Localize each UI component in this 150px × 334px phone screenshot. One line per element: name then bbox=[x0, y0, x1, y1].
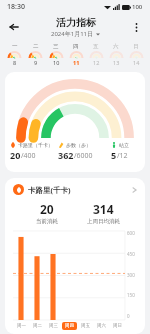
staticText: 18:30 bbox=[7, 2, 25, 12]
staticText: 12 bbox=[93, 59, 100, 66]
staticText: 600 bbox=[127, 230, 135, 236]
staticText: /12 bbox=[117, 151, 128, 161]
staticText: 9 bbox=[34, 59, 38, 66]
button[interactable]: 卡路里（千卡） bbox=[5, 72, 145, 172]
button[interactable]: 周日 bbox=[109, 320, 125, 332]
staticText: 四 bbox=[73, 43, 79, 50]
staticText: 二 bbox=[33, 43, 39, 50]
button[interactable]: 周六 bbox=[93, 320, 109, 332]
button[interactable]: More options bbox=[126, 17, 146, 37]
button[interactable]: Back bbox=[4, 17, 24, 37]
staticText: 周三 bbox=[49, 323, 58, 329]
staticText: 卡路里（千卡） bbox=[18, 142, 53, 148]
staticText: 上周日均消耗 bbox=[87, 218, 120, 225]
button[interactable]: 站立 bbox=[111, 142, 140, 161]
button[interactable]: 三 bbox=[46, 40, 66, 68]
staticText: 一 bbox=[12, 43, 18, 50]
button[interactable]: 周五 bbox=[77, 320, 93, 332]
button[interactable]: 周四 bbox=[61, 320, 77, 332]
staticText: 100 bbox=[132, 3, 143, 11]
staticText: 0 bbox=[127, 313, 130, 319]
staticText: 周一 bbox=[17, 323, 26, 329]
staticText: 20 bbox=[40, 201, 54, 217]
staticText: 14 bbox=[133, 59, 140, 66]
staticText: 450 bbox=[127, 251, 135, 257]
staticText: 11 bbox=[73, 59, 80, 66]
button[interactable]: 步数（步） bbox=[58, 142, 111, 161]
staticText: 5 bbox=[111, 149, 117, 161]
button[interactable]: 一 bbox=[4, 40, 25, 68]
button[interactable]: 周一 bbox=[13, 320, 29, 332]
staticText: 周二 bbox=[33, 323, 42, 329]
staticText: 周四 bbox=[65, 323, 74, 329]
staticText: 五 bbox=[93, 43, 99, 50]
staticText: 三 bbox=[53, 43, 59, 50]
button[interactable]: 六 bbox=[106, 40, 126, 68]
staticText: 周五 bbox=[81, 323, 90, 329]
staticText: 2024年1月11日 bbox=[51, 30, 94, 38]
button[interactable]: 五 bbox=[86, 40, 106, 68]
button[interactable]: 卡路里（千卡） bbox=[10, 142, 58, 161]
button[interactable]: 周二 bbox=[29, 320, 45, 332]
button[interactable]: 卡路里(千卡) bbox=[13, 184, 137, 195]
staticText: 卡路里(千卡) bbox=[28, 185, 71, 195]
staticText: 站立 bbox=[119, 142, 129, 148]
staticText: 当前消耗 bbox=[36, 218, 58, 225]
staticText: /400 bbox=[21, 151, 36, 161]
staticText: /6000 bbox=[74, 151, 93, 161]
staticText: 周六 bbox=[97, 323, 106, 329]
staticText: 10 bbox=[53, 59, 60, 66]
staticText: 活力指标 bbox=[56, 16, 96, 29]
staticText: 日 bbox=[133, 43, 139, 50]
button[interactable]: 周三 bbox=[45, 320, 61, 332]
button[interactable]: 2024年1月11日 bbox=[51, 30, 100, 38]
staticText: 362 bbox=[58, 149, 74, 161]
staticText: 13 bbox=[113, 59, 120, 66]
button[interactable]: 二 bbox=[25, 40, 46, 68]
staticText: 周日 bbox=[113, 323, 122, 329]
staticText: 六 bbox=[113, 43, 119, 50]
button[interactable]: 四 bbox=[66, 40, 86, 68]
button[interactable]: 日 bbox=[126, 40, 146, 68]
staticText: 150 bbox=[127, 292, 135, 298]
staticText: 314 bbox=[93, 201, 114, 217]
staticText: 步数（步） bbox=[66, 142, 91, 148]
staticText: 20 bbox=[10, 149, 21, 161]
staticText: 8 bbox=[13, 59, 17, 66]
staticText: 300 bbox=[127, 272, 135, 278]
